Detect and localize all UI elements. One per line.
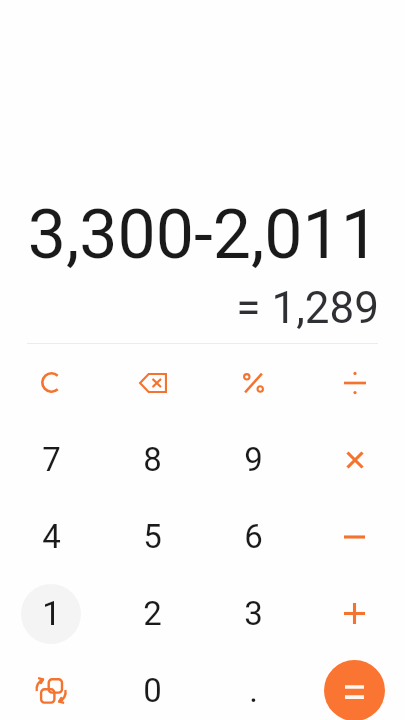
button[interactable]: 6 [203,498,304,575]
button[interactable]: Minus [304,498,405,575]
staticText: 0 [143,671,162,710]
staticText: 6 [244,517,263,556]
button[interactable]: 0 [102,652,203,720]
button[interactable]: 4 [0,498,102,575]
button[interactable]: 3 [203,575,304,652]
button[interactable]: 1 [0,575,102,652]
button[interactable]: 5 [102,498,203,575]
staticText: 1 [42,594,61,633]
staticText: . [249,671,258,710]
staticText: 3,300-2,011 [20,195,379,275]
button[interactable]: Divide [304,344,405,421]
button[interactable]: Percent [203,344,304,421]
button[interactable]: Unit converter [0,652,102,720]
staticText: 7 [42,440,61,479]
button[interactable]: Plus [304,575,405,652]
button[interactable]: Backspace [102,344,203,421]
staticText: 9 [244,440,263,479]
staticText: 3 [244,594,263,633]
staticText: = 1,289 [20,282,379,334]
button[interactable]: Clear [0,344,102,421]
staticText: 2 [143,594,162,633]
button[interactable]: 2 [102,575,203,652]
button[interactable]: 9 [203,421,304,498]
button[interactable]: Equals [304,652,405,720]
button[interactable]: 8 [102,421,203,498]
button[interactable]: 7 [0,421,102,498]
staticText: 8 [143,440,162,479]
button[interactable]: Decimal point [203,652,304,720]
button[interactable]: Equals [324,660,385,720]
staticText: 5 [143,517,162,556]
staticText: 4 [42,517,61,556]
button[interactable]: Multiply [304,421,405,498]
